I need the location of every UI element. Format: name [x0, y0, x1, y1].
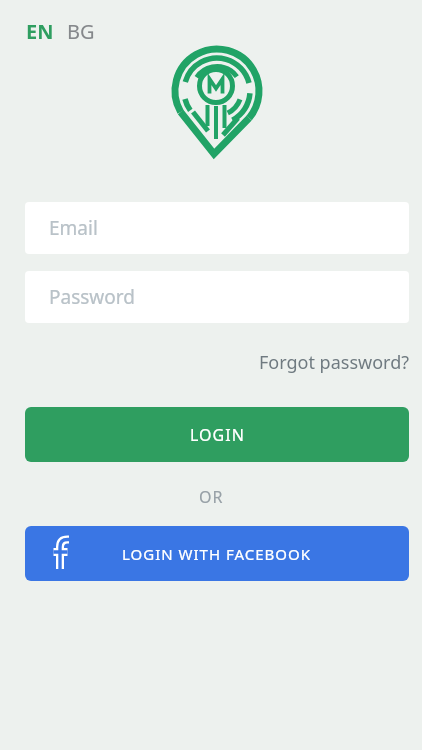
staticText: Password	[49, 284, 135, 310]
button[interactable]: Email	[25, 202, 409, 254]
button[interactable]: Forgot password?	[259, 350, 410, 375]
button[interactable]: LOGIN WITH FACEBOOK	[25, 526, 409, 581]
staticText: OR	[199, 486, 224, 508]
button[interactable]: LOGIN	[25, 407, 409, 462]
staticText: Email	[49, 215, 98, 241]
button[interactable]: Password	[25, 271, 409, 323]
button[interactable]: BG	[67, 18, 95, 45]
staticText: EN	[26, 18, 54, 45]
staticText: LOGIN WITH FACEBOOK	[122, 544, 312, 564]
staticText: BG	[67, 18, 95, 45]
staticText: Forgot password?	[259, 350, 410, 375]
button[interactable]: EN	[26, 18, 54, 45]
staticText: LOGIN	[190, 424, 245, 446]
